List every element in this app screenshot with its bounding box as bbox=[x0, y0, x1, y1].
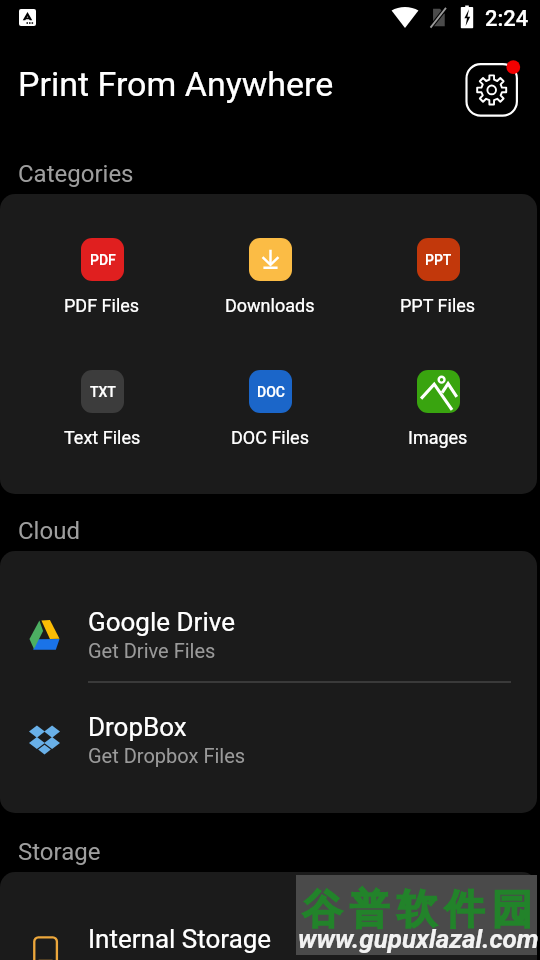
staticText: Images bbox=[408, 427, 468, 448]
button[interactable]: Internal Storage bbox=[0, 886, 537, 960]
staticText: Print From Anywhere bbox=[18, 64, 334, 104]
staticText: Google Drive bbox=[88, 607, 235, 637]
staticText: 谷普软件园 bbox=[302, 884, 540, 934]
staticText: Downloads bbox=[225, 295, 315, 316]
button[interactable]: Google Drive bbox=[0, 568, 537, 700]
staticText: TXT bbox=[90, 384, 116, 400]
staticText: PPT bbox=[425, 252, 452, 268]
button[interactable]: Settings bbox=[462, 56, 522, 116]
staticText: DropBox bbox=[88, 712, 187, 742]
button[interactable]: Images bbox=[354, 370, 522, 448]
staticText: Get Dropbox Files bbox=[88, 744, 246, 767]
button[interactable]: DOC bbox=[186, 370, 354, 448]
button[interactable]: PDF bbox=[18, 238, 186, 316]
staticText: Cloud bbox=[18, 517, 80, 545]
button[interactable]: PPT bbox=[354, 238, 522, 316]
staticText: www.gupuxlazal.com bbox=[298, 924, 539, 954]
staticText: Internal Storage bbox=[88, 924, 272, 954]
staticText: Get Drive Files bbox=[88, 639, 216, 662]
staticText: PDF Files bbox=[64, 295, 140, 316]
button[interactable]: DropBox bbox=[0, 673, 537, 805]
button[interactable]: Downloads bbox=[186, 238, 354, 316]
staticText: 2:24 bbox=[485, 6, 529, 32]
staticText: PPT Files bbox=[400, 295, 476, 316]
staticText: DOC bbox=[257, 384, 285, 400]
staticText: PDF bbox=[90, 252, 116, 268]
staticText: Storage bbox=[18, 838, 101, 866]
staticText: Categories bbox=[18, 160, 134, 188]
staticText: Text Files bbox=[64, 427, 141, 448]
staticText: DOC Files bbox=[231, 427, 309, 448]
button[interactable]: TXT bbox=[18, 370, 186, 448]
